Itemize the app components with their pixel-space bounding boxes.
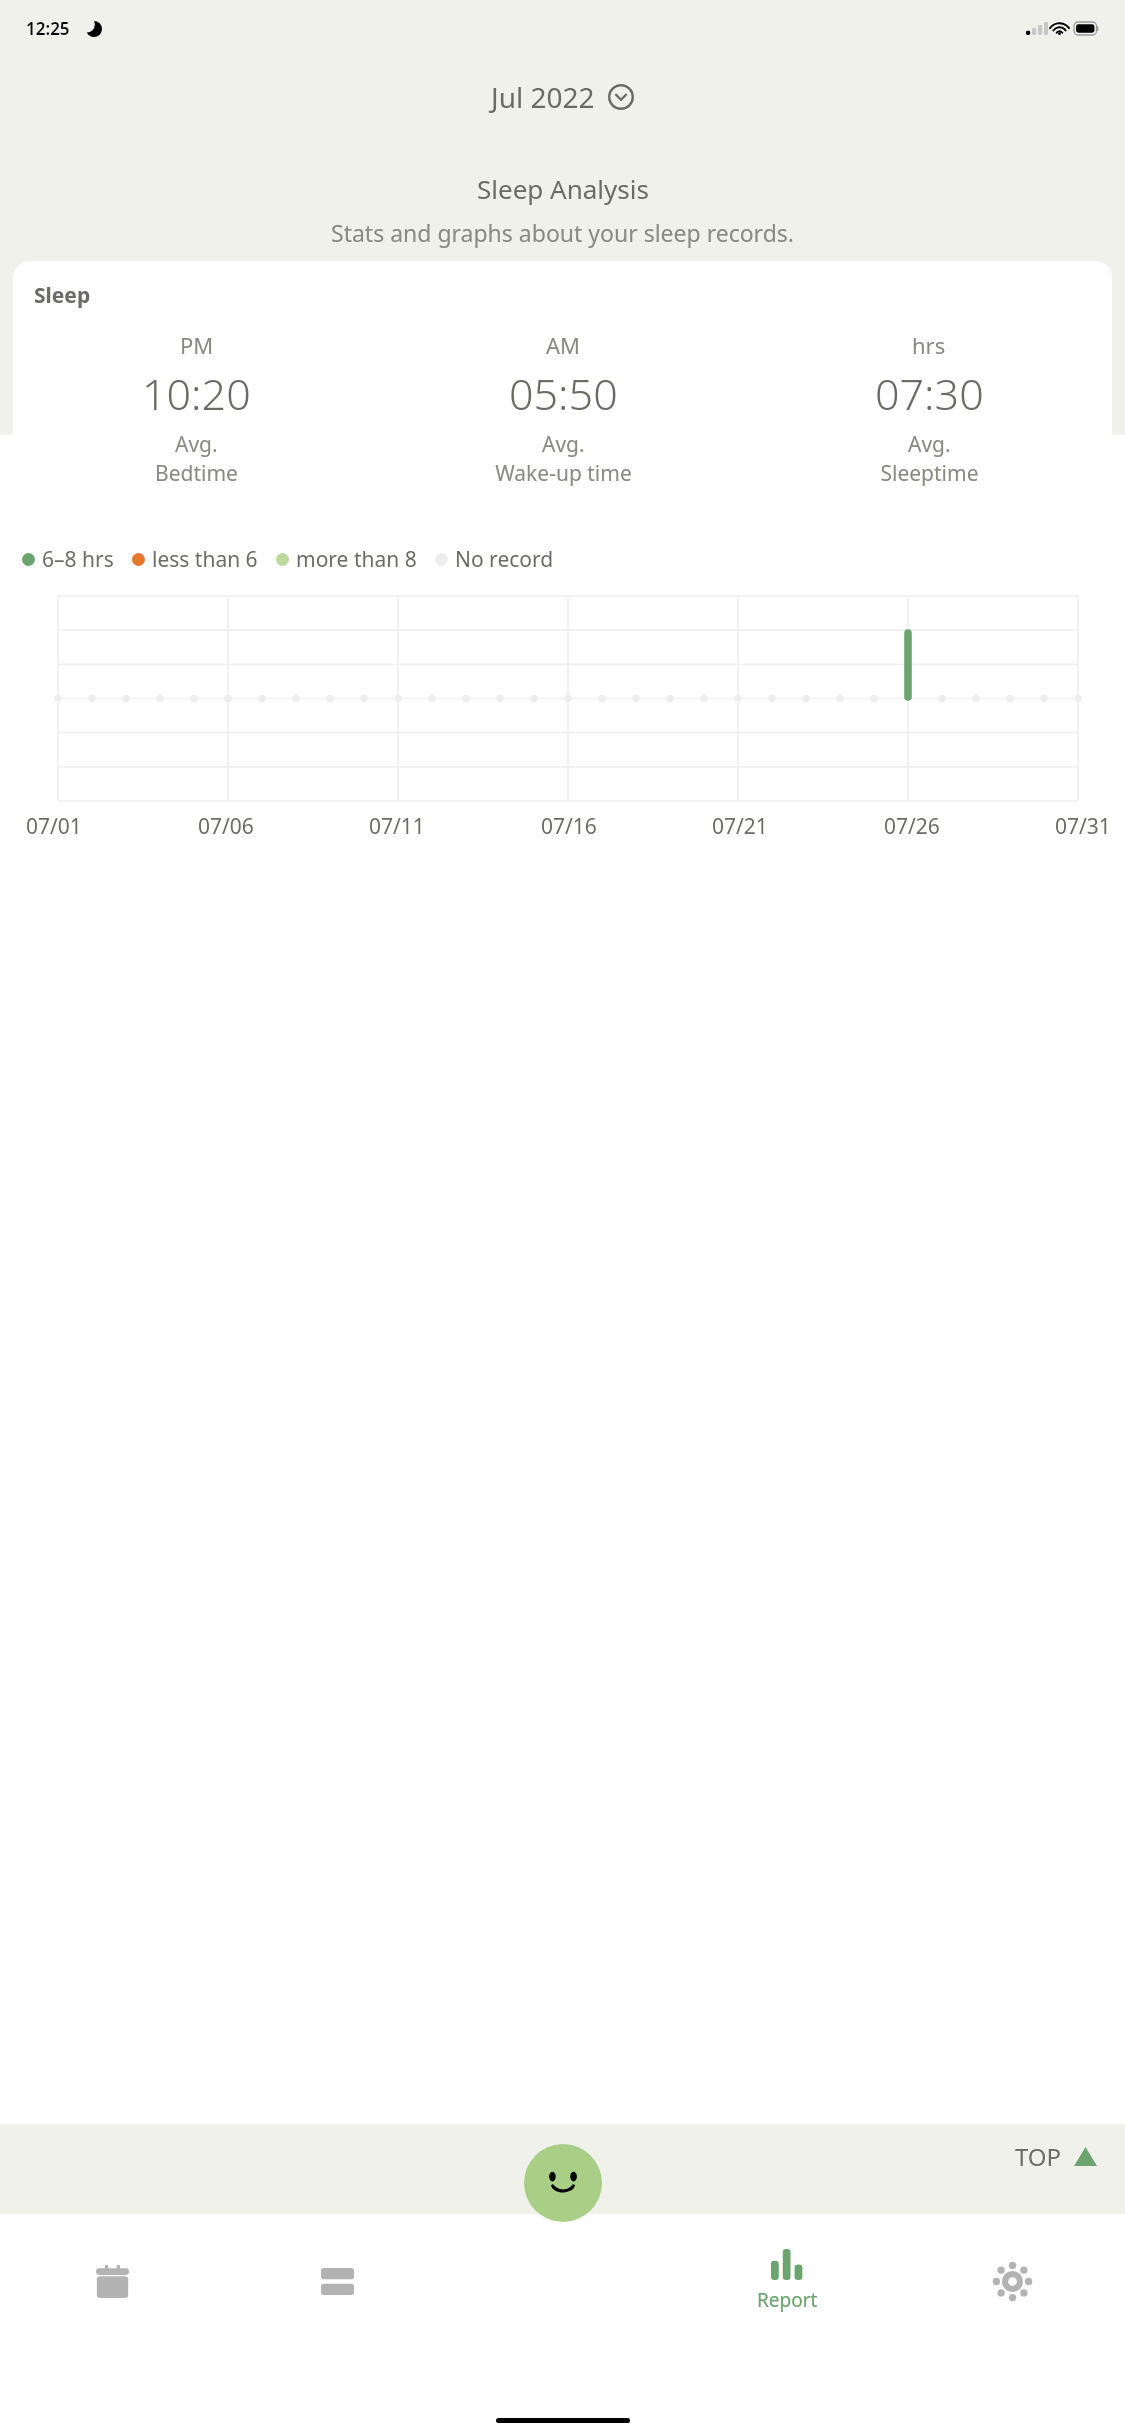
staticText: 07:30 <box>875 364 984 423</box>
button[interactable]: Jul 2022 <box>479 72 646 122</box>
staticText: Wake-up time <box>495 459 632 488</box>
staticText: 12:25 <box>26 17 70 40</box>
staticText: PM <box>180 330 214 360</box>
staticText: 07/26 <box>884 812 940 841</box>
staticText: less than 6 <box>152 545 258 574</box>
staticText: Jul 2022 <box>491 78 595 116</box>
button[interactable]: Report <box>675 2238 900 2324</box>
staticText: Sleeptime <box>880 459 979 488</box>
staticText: 10:20 <box>142 364 251 423</box>
button[interactable]: Add record <box>524 2144 602 2222</box>
staticText: Avg. <box>542 430 585 459</box>
staticText: 07/01 <box>26 812 82 841</box>
staticText: more than 8 <box>296 545 417 574</box>
staticText: 07/31 <box>1055 812 1111 841</box>
staticText: Sleep Analysis <box>477 171 649 206</box>
staticText: 6–8 hrs <box>42 545 114 574</box>
staticText: Sleep <box>34 281 91 310</box>
staticText: Avg. <box>908 430 951 459</box>
staticText: 07/11 <box>369 812 425 841</box>
staticText: 07/16 <box>541 812 597 841</box>
staticText: 07/06 <box>198 812 254 841</box>
button[interactable]: List <box>225 2238 450 2324</box>
staticText: 05:50 <box>509 364 618 423</box>
button[interactable]: Calendar <box>0 2238 225 2324</box>
staticText: Avg. <box>175 430 218 459</box>
staticText: 07/21 <box>712 812 768 841</box>
staticText: Report <box>757 2287 818 2313</box>
staticText: Bedtime <box>155 459 238 488</box>
staticText: No record <box>455 545 554 574</box>
button[interactable]: TOP <box>1007 2136 1105 2177</box>
button[interactable]: Sleep <box>13 261 1112 512</box>
staticText: Stats and graphs about your sleep record… <box>331 217 794 248</box>
staticText: TOP <box>1015 2140 1062 2173</box>
staticText: hrs <box>912 330 946 360</box>
staticText: AM <box>546 330 581 360</box>
button[interactable]: Settings <box>900 2238 1125 2324</box>
